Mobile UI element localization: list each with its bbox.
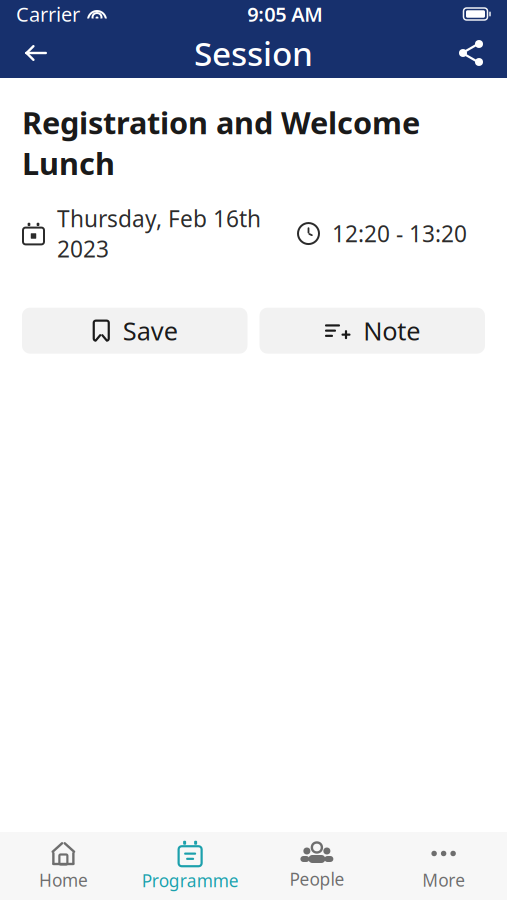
staticText: Registration and Welcome Lunch [22, 102, 420, 183]
staticText: Programme [142, 869, 239, 892]
button[interactable]: Note [259, 308, 485, 354]
button[interactable]: Save [22, 308, 247, 354]
staticText: Session [194, 31, 313, 75]
button[interactable]: People [253, 835, 380, 897]
button[interactable]: Home [0, 835, 127, 897]
staticText: People [289, 867, 344, 890]
staticText: 12:20 - 13:20 [332, 218, 467, 249]
button[interactable]: Share [443, 28, 499, 78]
button[interactable]: Back [8, 28, 64, 78]
staticText: More [422, 868, 465, 891]
staticText: Home [39, 868, 88, 891]
button[interactable]: More [380, 835, 507, 897]
staticText: 9:05 AM [247, 1, 323, 27]
staticText: Carrier [16, 1, 80, 27]
staticText: Note [363, 314, 420, 347]
button[interactable]: Programme [127, 835, 254, 897]
staticText: Thursday, Feb 16th 2023 [57, 203, 261, 264]
staticText: Save [123, 314, 178, 347]
